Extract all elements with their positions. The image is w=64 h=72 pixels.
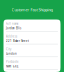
staticText: NW1 6XE — [6, 65, 18, 68]
staticText: Full name — [6, 22, 19, 25]
staticText: Address — [6, 35, 17, 38]
staticText: Jordan Ellis — [6, 26, 21, 30]
staticText: Customer Fast Shipping — [11, 7, 52, 12]
staticText: City — [6, 47, 11, 51]
staticText: 221 Baker Street — [6, 39, 29, 43]
staticText: Postcode — [6, 60, 19, 64]
staticText: London — [6, 52, 17, 55]
